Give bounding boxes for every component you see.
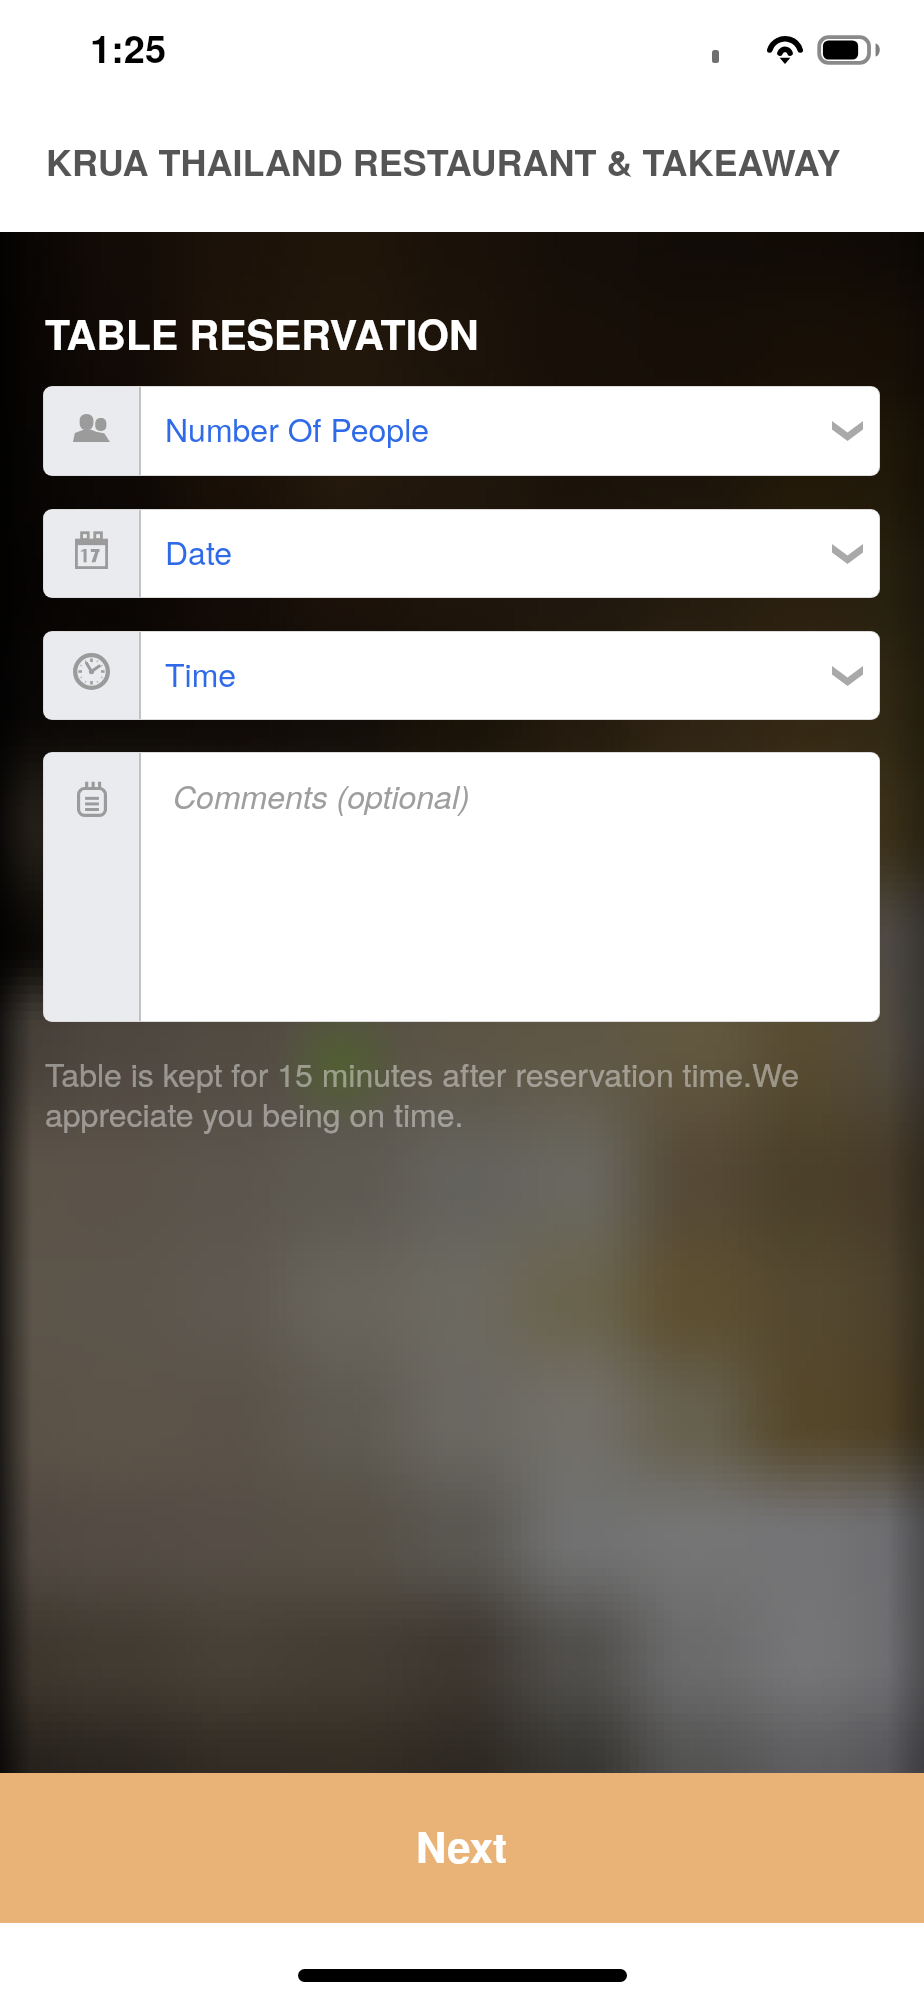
staticText: Time — [165, 650, 237, 696]
button[interactable]: Time — [44, 632, 879, 719]
staticText: KRUA THAILAND RESTAURANT & TAKEAWAY — [46, 135, 841, 187]
button[interactable]: Next — [0, 1773, 924, 1923]
staticText: Date — [165, 528, 233, 574]
button[interactable]: Date — [44, 510, 879, 597]
button[interactable]: Comments — [44, 753, 879, 1021]
other: Battery — [818, 36, 877, 64]
staticText: Number Of People — [165, 405, 430, 451]
staticText: Next — [416, 1816, 508, 1876]
staticText: Table is kept for 15 minutes after reser… — [45, 1050, 819, 1136]
other: Wi-Fi — [767, 36, 803, 64]
staticText: TABLE RESERVATION — [45, 304, 479, 363]
button[interactable]: Number of people — [44, 387, 879, 475]
staticText: 1:25 — [90, 20, 167, 74]
staticText: Comments (optional) — [173, 773, 470, 818]
